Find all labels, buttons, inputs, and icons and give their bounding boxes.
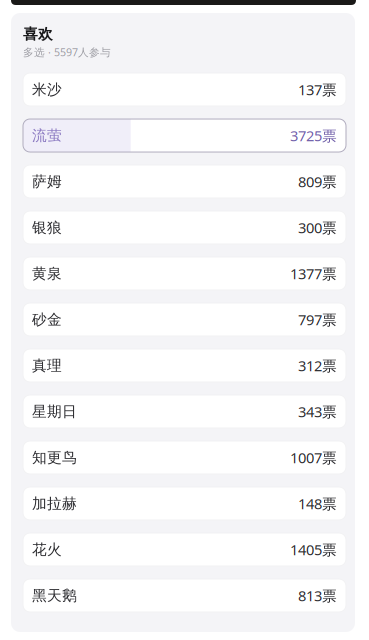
staticText: 3725票	[290, 126, 337, 145]
staticText: 1377票	[290, 264, 337, 283]
button[interactable]: 加拉赫	[23, 487, 346, 520]
staticText: 1007票	[290, 448, 337, 467]
button[interactable]: 星期日	[23, 395, 346, 428]
staticText: 813票	[298, 586, 337, 605]
staticText: 137票	[298, 80, 337, 99]
staticText: 流萤	[32, 126, 62, 144]
button[interactable]: 黄泉	[23, 257, 346, 290]
button[interactable]: 花火	[23, 533, 346, 566]
staticText: 809票	[298, 172, 337, 191]
button[interactable]: 真理	[23, 349, 346, 382]
staticText: 黄泉	[32, 264, 62, 282]
button[interactable]: 流萤	[23, 119, 346, 152]
button[interactable]: 银狼	[23, 211, 346, 244]
staticText: 1405票	[290, 540, 337, 559]
staticText: 343票	[298, 402, 337, 421]
staticText: 多选 · 5597人参与	[23, 45, 111, 59]
staticText: 砂金	[32, 310, 62, 328]
button[interactable]: 砂金	[23, 303, 346, 336]
staticText: 真理	[32, 356, 62, 374]
staticText: 星期日	[32, 402, 77, 420]
staticText: 300票	[298, 218, 337, 237]
staticText: 知更鸟	[32, 448, 77, 466]
staticText: 萨姆	[32, 172, 62, 190]
staticText: 花火	[32, 540, 62, 558]
staticText: 加拉赫	[32, 494, 77, 512]
staticText: 米沙	[32, 80, 62, 98]
button[interactable]: 萨姆	[23, 165, 346, 198]
staticText: 黑天鹅	[32, 586, 77, 604]
button[interactable]: 黑天鹅	[23, 579, 346, 612]
staticText: 312票	[298, 356, 337, 375]
staticText: 喜欢	[23, 25, 53, 43]
button[interactable]: 米沙	[23, 73, 346, 106]
button[interactable]: 知更鸟	[23, 441, 346, 474]
staticText: 797票	[298, 310, 337, 329]
staticText: 148票	[298, 494, 337, 513]
staticText: 银狼	[32, 218, 62, 236]
